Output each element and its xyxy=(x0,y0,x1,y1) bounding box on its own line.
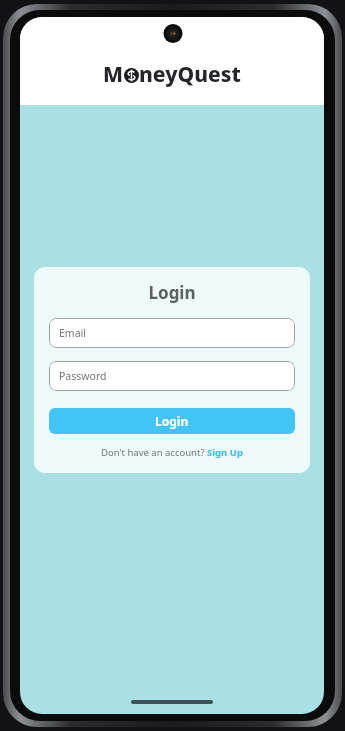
staticText: neyQuest xyxy=(139,60,241,89)
button[interactable]: Login xyxy=(49,408,295,434)
staticText: Sign Up xyxy=(207,446,243,459)
staticText: Login xyxy=(155,413,189,429)
staticText: Login xyxy=(49,281,295,304)
staticText: Email xyxy=(59,326,86,340)
staticText: M xyxy=(103,60,124,89)
button[interactable]: Email xyxy=(49,318,295,348)
other: Home xyxy=(131,700,213,704)
staticText: Password xyxy=(59,369,107,383)
staticText: Don't have an account? xyxy=(101,446,207,459)
button[interactable]: Password xyxy=(49,361,295,391)
button[interactable]: Sign Up xyxy=(207,446,243,459)
